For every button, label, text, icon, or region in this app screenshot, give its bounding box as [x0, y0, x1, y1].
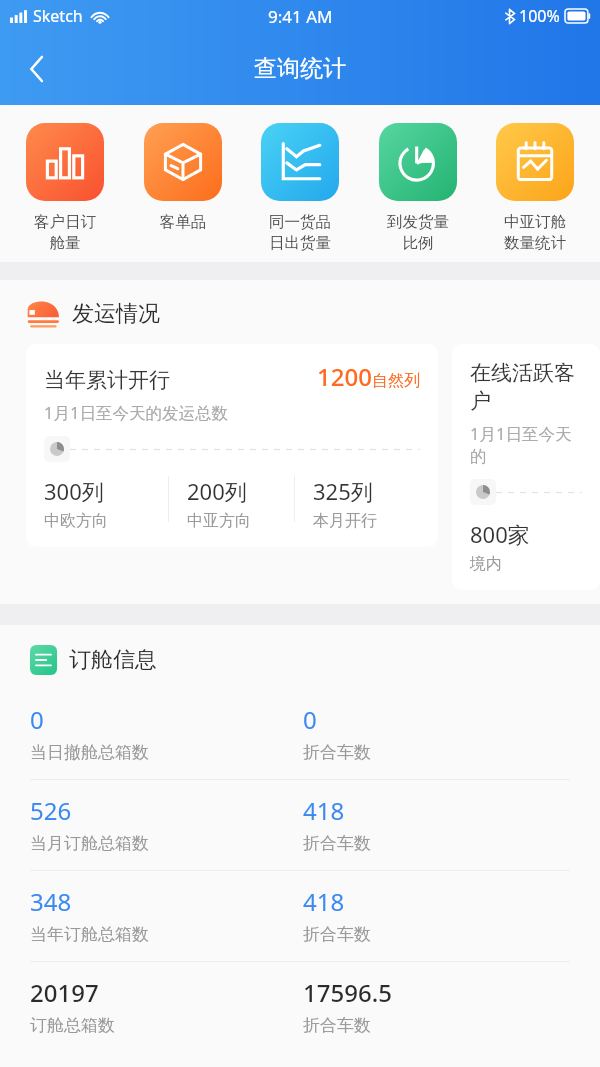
staticText: 348 [30, 885, 72, 918]
staticText: 折合车数 [303, 1015, 371, 1036]
staticText: 1月1日至今天的 [470, 422, 582, 467]
staticText: 到发货量比例 [381, 212, 455, 252]
staticText: 客单品 [146, 212, 220, 232]
staticText: 订舱总箱数 [30, 1015, 115, 1036]
button[interactable]: 中亚订舱数量统计 [486, 123, 584, 252]
staticText: 9:41 AM [268, 5, 333, 28]
staticText: 查询统计 [254, 54, 346, 83]
button[interactable]: 同一货品日出货量 [251, 123, 349, 252]
staticText: 200列 [187, 476, 247, 506]
staticText: 17596.5 [303, 976, 392, 1009]
staticText: 自然列 [372, 371, 420, 391]
button[interactable]: 在线活跃客户 [452, 344, 600, 590]
staticText: 折合车数 [303, 833, 371, 854]
staticText: 1200 [317, 360, 372, 393]
staticText: 0 [30, 703, 44, 736]
staticText: 当年累计开行 [44, 367, 170, 393]
button[interactable]: 到发货量比例 [369, 123, 467, 252]
staticText: 同一货品日出货量 [263, 212, 337, 252]
staticText: 境内 [470, 554, 502, 574]
staticText: 800家 [470, 519, 530, 549]
staticText: 折合车数 [303, 924, 371, 945]
button[interactable]: 当年累计开行 [26, 344, 438, 547]
staticText: 当月订舱总箱数 [30, 833, 149, 854]
staticText: 300列 [44, 476, 104, 506]
staticText: 325列 [313, 476, 373, 506]
staticText: 中亚订舱数量统计 [498, 212, 572, 252]
button[interactable]: 526 [0, 780, 600, 870]
button[interactable]: 客户日订舱量 [16, 123, 114, 252]
staticText: Sketch [33, 5, 83, 27]
staticText: 中亚方向 [187, 511, 251, 531]
staticText: 418 [303, 885, 345, 918]
staticText: 526 [30, 794, 72, 827]
staticText: 中欧方向 [44, 511, 108, 531]
button[interactable]: 客单品 [134, 123, 232, 232]
staticText: 1月1日至今天的发运总数 [44, 401, 228, 424]
staticText: 20197 [30, 976, 99, 1009]
staticText: 当年订舱总箱数 [30, 924, 149, 945]
staticText: 0 [303, 703, 317, 736]
staticText: 折合车数 [303, 742, 371, 763]
staticText: 418 [303, 794, 345, 827]
button[interactable]: Back [14, 46, 60, 92]
staticText: 发运情况 [72, 300, 160, 328]
staticText: 订舱信息 [69, 646, 157, 674]
staticText: 100% [519, 5, 560, 27]
button[interactable]: 0 [0, 689, 600, 779]
button[interactable]: 348 [0, 871, 600, 961]
staticText: 本月开行 [313, 511, 377, 531]
button[interactable]: 20197 [0, 962, 600, 1052]
staticText: 在线活跃客户 [470, 360, 582, 414]
staticText: 客户日订舱量 [28, 212, 102, 252]
staticText: 当日撤舱总箱数 [30, 742, 149, 763]
